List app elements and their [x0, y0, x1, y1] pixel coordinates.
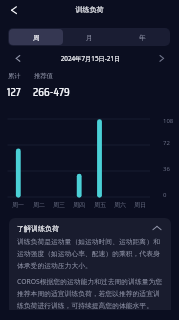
- staticText: 训练负荷是运动量（如运动时间、运动距离）和运动强度（如运动心率、配速）的乘积，代…: [17, 237, 163, 270]
- staticText: 108: [163, 117, 174, 125]
- button[interactable]: Back: [3, 2, 20, 19]
- staticText: 了解训练负荷: [17, 224, 151, 233]
- staticText: 周二: [30, 201, 48, 209]
- button[interactable]: Previous week: [10, 50, 26, 66]
- staticText: 年: [139, 33, 146, 42]
- button[interactable]: 了解训练负荷: [17, 222, 163, 234]
- staticText: 127: [7, 82, 21, 101]
- staticText: 0: [163, 191, 167, 199]
- staticText: 周日: [131, 201, 149, 209]
- staticText: 周三: [50, 201, 68, 209]
- staticText: 月: [86, 33, 93, 42]
- staticText: 累计: [8, 72, 21, 80]
- staticText: 周六: [111, 201, 129, 209]
- button[interactable]: 月: [63, 29, 116, 45]
- staticText: 36: [163, 165, 170, 173]
- staticText: 2024年7月15日-21日: [1, 54, 179, 63]
- staticText: 训练负荷: [0, 5, 179, 14]
- button[interactable]: 年: [116, 29, 169, 45]
- staticText: 周五: [91, 201, 109, 209]
- staticText: 周四: [70, 201, 88, 209]
- button[interactable]: 周: [9, 29, 63, 45]
- staticText: 周一: [9, 201, 27, 209]
- staticText: COROS根据您的运动能力和过去周的训练量为您推荐本周的适宜训练负荷，若您以推荐…: [17, 277, 163, 310]
- staticText: 72: [163, 139, 170, 147]
- staticText: 推荐值: [34, 72, 53, 80]
- staticText: 266-479: [33, 82, 70, 101]
- button[interactable]: Next week: [154, 50, 170, 66]
- staticText: 周: [33, 33, 40, 42]
